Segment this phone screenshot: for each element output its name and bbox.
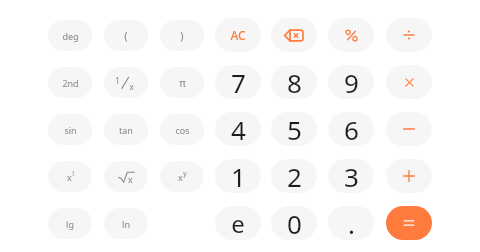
staticText: 4 [231,112,246,146]
staticText: sin [64,124,77,136]
button[interactable]: Percent [328,18,374,52]
staticText: ( [124,28,128,43]
staticText: . [348,206,355,240]
button[interactable]: 2 [271,159,317,193]
button[interactable]: deg [48,20,92,51]
button[interactable]: π [160,67,204,98]
button[interactable]: cos [160,114,204,145]
button[interactable]: 8 [271,65,317,99]
button[interactable]: Square root [104,161,148,192]
staticText: 3 [344,159,359,193]
staticText: e [231,207,245,240]
staticText: 0 [287,206,302,240]
button[interactable]: AC [215,18,261,52]
button[interactable]: Plus [386,159,432,193]
button[interactable]: 9 [328,65,374,99]
staticText: ) [180,28,184,43]
button[interactable]: 7 [215,65,261,99]
staticText: 1 [115,75,120,86]
staticText: π [179,76,186,90]
button[interactable]: One over x [104,67,148,98]
button[interactable]: Divide [386,18,432,52]
button[interactable]: sin [48,114,92,145]
staticText: 5 [287,112,302,146]
button[interactable]: x to the power y [160,161,204,192]
staticText: y [183,169,187,178]
staticText: 9 [344,65,359,99]
staticText: 2nd [62,77,79,89]
staticText: 2 [287,159,302,193]
staticText: x [129,81,134,92]
button[interactable]: 1 [215,159,261,193]
staticText: tan [119,124,133,136]
staticText: ! [72,169,74,178]
button[interactable]: e [215,206,261,240]
button[interactable]: ln [104,208,148,239]
staticText: deg [62,30,79,42]
button[interactable]: 3 [328,159,374,193]
button[interactable]: lg [48,208,92,239]
button[interactable]: ) [160,20,204,51]
button[interactable]: Minus [386,112,432,146]
staticText: 6 [344,112,359,146]
staticText: lg [66,218,74,230]
button[interactable]: Multiply [386,65,432,99]
button[interactable]: ( [104,20,148,51]
staticText: ln [122,218,130,230]
staticText: AC [230,27,246,43]
button[interactable]: 2nd [48,67,92,98]
staticText: x [178,171,183,183]
button[interactable]: 0 [271,206,317,240]
button[interactable]: 4 [215,112,261,146]
staticText: 1 [231,159,246,193]
staticText: 8 [287,65,302,99]
button[interactable]: Equals [386,206,432,240]
staticText: 7 [231,65,246,99]
button[interactable]: Backspace [271,18,317,52]
staticText: cos [175,124,190,136]
button[interactable]: 5 [271,112,317,146]
staticText: x [128,173,133,185]
button[interactable]: Factorial [48,161,92,192]
button[interactable]: tan [104,114,148,145]
staticText: x [67,171,72,183]
button[interactable]: . [328,206,374,240]
button[interactable]: 6 [328,112,374,146]
